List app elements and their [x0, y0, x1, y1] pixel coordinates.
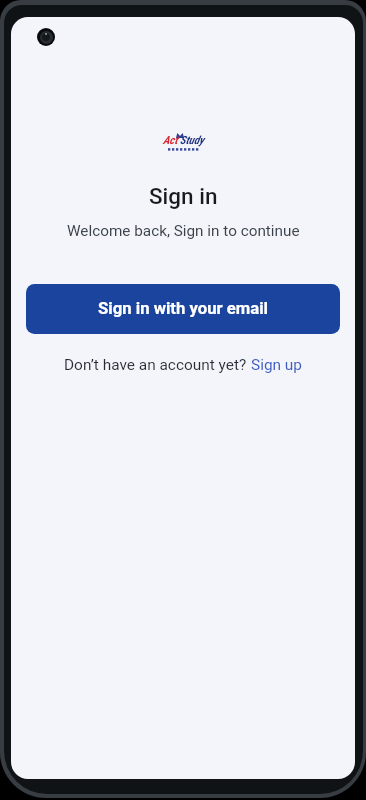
button[interactable]: Sign in with your email	[26, 284, 340, 334]
staticText: Sign in	[149, 183, 218, 209]
staticText: Act Study	[163, 134, 204, 147]
staticText: Sign in with your email	[98, 299, 269, 319]
staticText: Welcome back, Sign in to continue	[67, 222, 300, 240]
staticText: Sign up	[251, 356, 302, 374]
button[interactable]: Sign up	[251, 356, 302, 374]
staticText: Don’t have an account yet?	[64, 356, 251, 374]
